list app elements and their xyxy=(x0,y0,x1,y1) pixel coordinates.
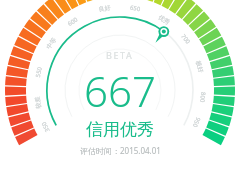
staticText: 信用优秀 xyxy=(86,119,154,140)
staticText: BETA xyxy=(106,49,134,61)
staticText: 评估时间：2015.04.01 xyxy=(80,145,161,156)
button[interactable]: Credit score gauge 667 xyxy=(0,0,240,180)
staticText: 667 xyxy=(84,62,156,119)
